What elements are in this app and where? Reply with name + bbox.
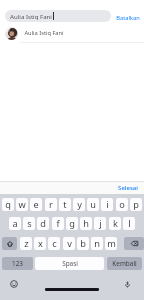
button[interactable]: b <box>77 237 89 250</box>
button[interactable]: y <box>73 198 85 211</box>
staticText: Kembali <box>112 259 137 268</box>
staticText: f <box>56 217 60 230</box>
button[interactable]: m <box>105 237 117 250</box>
button[interactable]: n <box>91 237 103 250</box>
staticText: r <box>49 198 53 211</box>
button[interactable]: Aulia Istiq Fani <box>5 10 111 22</box>
button[interactable]: q <box>2 198 14 211</box>
staticText: h <box>83 217 89 230</box>
staticText: w <box>18 198 26 211</box>
button[interactable]: v <box>63 237 75 250</box>
staticText: g <box>69 217 75 230</box>
button[interactable]: o <box>116 198 128 211</box>
staticText: y <box>77 198 82 211</box>
staticText: i <box>106 198 109 211</box>
staticText: s <box>27 217 32 230</box>
button[interactable]: Batalkan <box>115 13 141 23</box>
button[interactable]: g <box>66 217 78 230</box>
button[interactable]: s <box>23 217 35 230</box>
staticText: p <box>133 198 139 211</box>
button[interactable]: Kembali <box>107 257 142 270</box>
staticText: j <box>99 217 102 230</box>
staticText: x <box>38 237 43 250</box>
staticText: a <box>12 217 18 230</box>
button[interactable]: f <box>52 217 64 230</box>
staticText: u <box>90 198 96 211</box>
button[interactable]: e <box>30 198 42 211</box>
staticText: o <box>119 198 125 211</box>
staticText: q <box>5 198 11 211</box>
button[interactable]: d <box>37 217 49 230</box>
button[interactable]: Aulia Istiq Fani <box>0 26 144 40</box>
button[interactable]: p <box>130 198 142 211</box>
staticText: l <box>128 217 131 230</box>
staticText: k <box>113 217 118 230</box>
button[interactable]: Emoji keyboard <box>8 278 20 290</box>
staticText: 123 <box>12 259 23 268</box>
button[interactable]: 123 <box>2 257 33 270</box>
button[interactable]: r <box>45 198 57 211</box>
button[interactable]: Shift <box>2 237 17 250</box>
staticText: n <box>94 237 100 250</box>
button[interactable]: l <box>123 217 135 230</box>
staticText: e <box>33 198 39 211</box>
button[interactable]: k <box>109 217 121 230</box>
button[interactable]: Spasi <box>35 257 104 270</box>
staticText: d <box>40 217 46 230</box>
button[interactable]: h <box>80 217 92 230</box>
staticText: Selesai <box>118 184 138 192</box>
button[interactable]: a <box>9 217 21 230</box>
button[interactable]: t <box>59 198 71 211</box>
button[interactable]: u <box>87 198 99 211</box>
staticText: Batalkan <box>116 14 140 22</box>
staticText: Spasi <box>62 259 78 268</box>
staticText: Aulia Istiq Fani <box>10 12 52 20</box>
button[interactable]: c <box>48 237 60 250</box>
staticText: b <box>80 237 86 250</box>
staticText: z <box>24 237 29 250</box>
staticText: c <box>52 237 57 250</box>
button[interactable]: i <box>101 198 113 211</box>
button[interactable]: z <box>20 237 32 250</box>
button[interactable]: Dictation <box>121 278 133 290</box>
staticText: Aulia Istiq Fani <box>24 29 64 37</box>
button[interactable]: j <box>94 217 106 230</box>
button[interactable]: w <box>16 198 28 211</box>
button[interactable]: Selesai <box>120 183 144 193</box>
button[interactable]: x <box>34 237 46 250</box>
staticText: m <box>107 237 116 250</box>
staticText: v <box>67 237 72 250</box>
staticText: t <box>63 198 67 211</box>
button[interactable]: Backspace <box>124 237 144 250</box>
